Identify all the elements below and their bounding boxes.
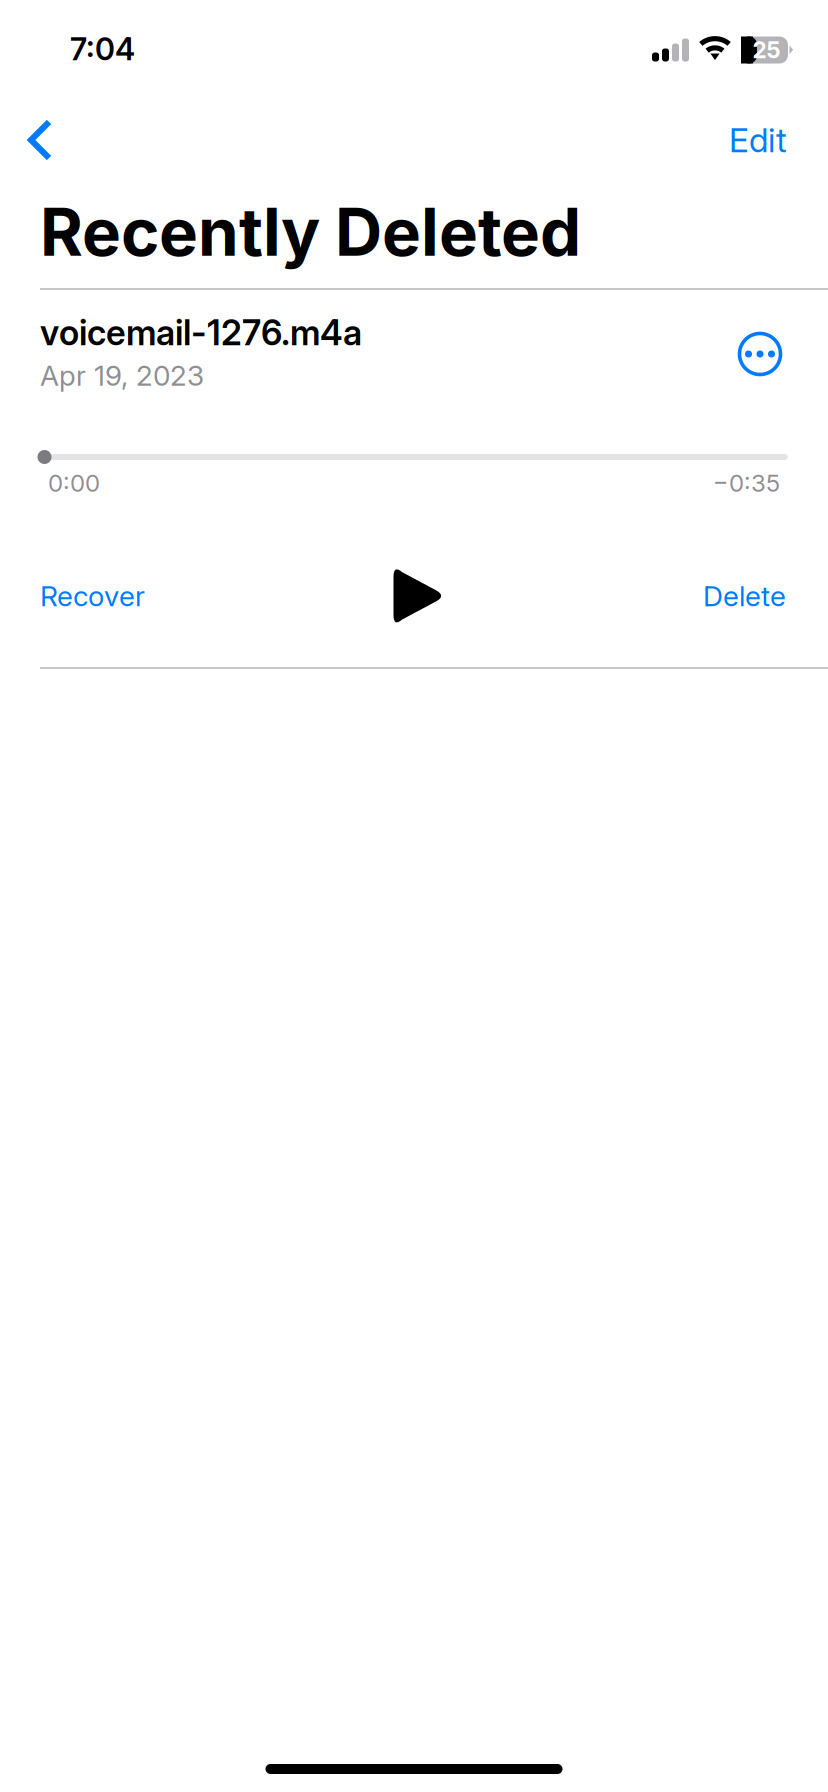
button[interactable]: Recover bbox=[40, 566, 145, 626]
button[interactable]: Play bbox=[378, 566, 450, 626]
staticText: 7:04 bbox=[70, 30, 135, 67]
staticText: 25 bbox=[752, 36, 780, 64]
staticText: voicemail-1276.m4a bbox=[40, 312, 362, 353]
button[interactable]: Back bbox=[26, 118, 86, 162]
staticText: Delete bbox=[703, 579, 786, 613]
staticText: −0:35 bbox=[713, 468, 780, 497]
staticText: Edit bbox=[729, 120, 787, 160]
button[interactable]: Delete bbox=[703, 566, 786, 626]
staticText: Recently Deleted bbox=[40, 192, 581, 271]
button[interactable]: More options bbox=[734, 326, 786, 378]
staticText: 0:00 bbox=[48, 468, 100, 497]
staticText: Apr 19, 2023 bbox=[40, 358, 204, 392]
button[interactable]: Edit bbox=[729, 120, 787, 160]
staticText: Recover bbox=[40, 579, 145, 613]
